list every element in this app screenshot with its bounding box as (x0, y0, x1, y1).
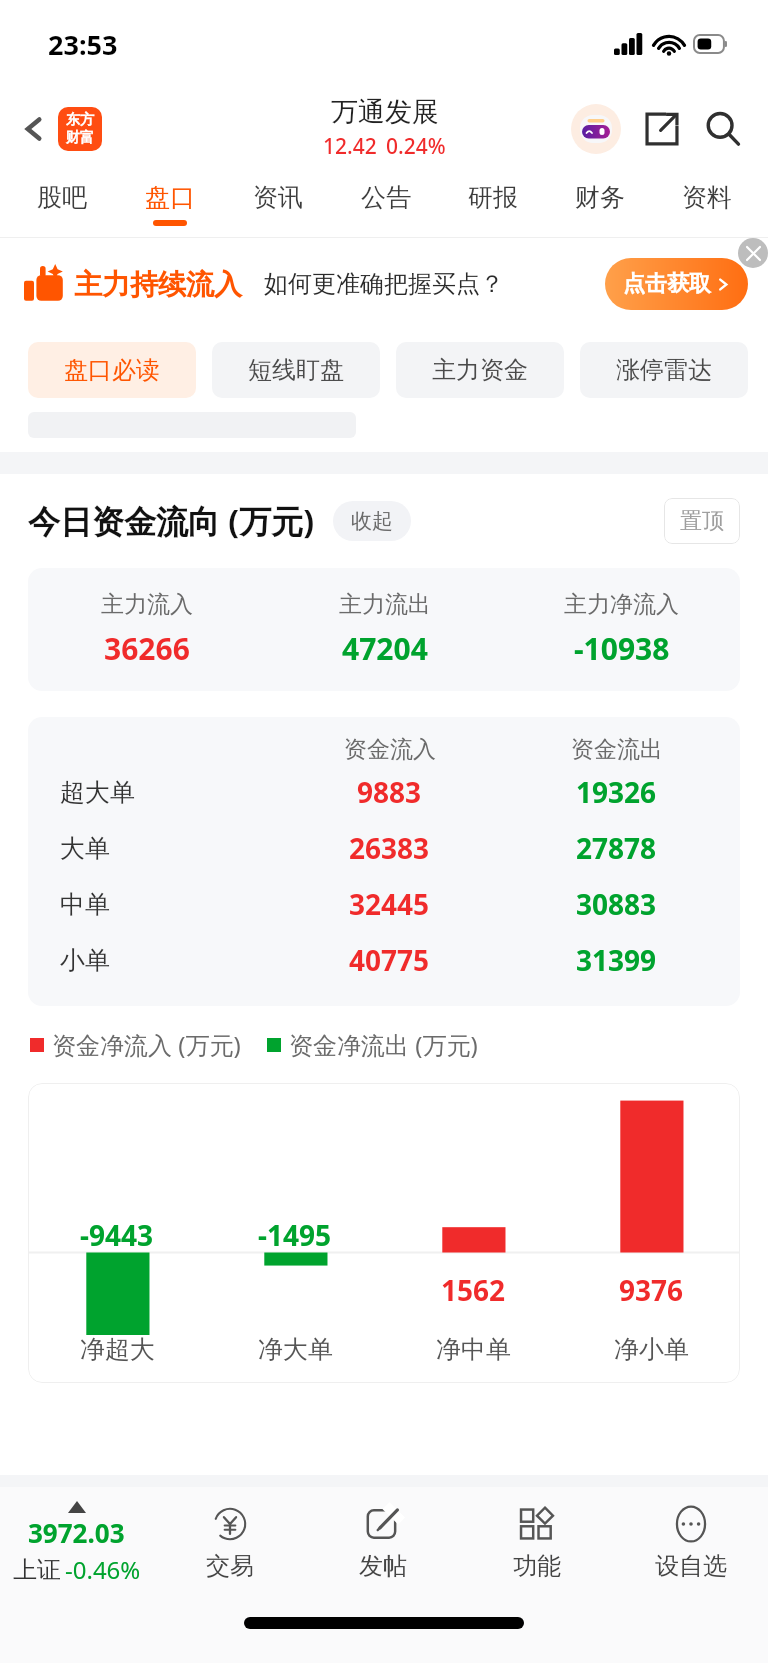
staticText: 9376 (619, 1271, 684, 1309)
staticText: 资金流入 (344, 735, 436, 764)
button[interactable]: Search (696, 102, 750, 156)
staticText: 公告 (361, 182, 411, 213)
staticText: 36266 (104, 628, 190, 669)
staticText: 收起 (351, 508, 393, 534)
staticText: 大单 (60, 833, 110, 864)
staticText: 23:53 (48, 26, 118, 63)
button[interactable]: 交易 (153, 1487, 306, 1599)
staticText: 设自选 (655, 1551, 727, 1581)
button[interactable]: 3972.03 (0, 1487, 153, 1599)
staticText: 12.42 (323, 132, 377, 161)
staticText: 26383 (349, 829, 430, 867)
button[interactable]: 置顶 (664, 498, 740, 544)
button[interactable]: AI assistant (568, 101, 624, 157)
button[interactable]: 资讯 (224, 170, 332, 237)
staticText: 小单 (60, 945, 110, 976)
button[interactable]: Close (738, 238, 768, 268)
staticText: 主力资金 (432, 355, 528, 385)
staticText: 40775 (349, 941, 430, 979)
staticText: 如何更准确把握买点？ (264, 269, 504, 299)
staticText: 财富 (66, 129, 94, 147)
button[interactable]: 主力资金 (396, 342, 564, 398)
staticText: 财务 (575, 182, 625, 213)
staticText: -9443 (80, 1216, 154, 1254)
button[interactable]: 设自选 (614, 1487, 768, 1599)
staticText: 主力持续流入 (74, 267, 242, 302)
button[interactable]: 股吧 (8, 170, 116, 237)
staticText: 资金净流出 (万元) (289, 1028, 478, 1061)
button[interactable]: 点击获取 (605, 258, 748, 310)
staticText: 中单 (60, 889, 110, 920)
staticText: -10938 (574, 628, 670, 669)
button[interactable]: 财务 (546, 170, 653, 237)
staticText: 盘口 (145, 182, 195, 213)
staticText: 资金流出 (571, 735, 663, 764)
staticText: 主力流入 (101, 590, 193, 619)
staticText: -0.46% (65, 1553, 141, 1586)
button[interactable]: 盘口必读 (28, 342, 196, 398)
staticText: 净小单 (614, 1334, 689, 1365)
button[interactable]: Back (10, 99, 114, 159)
staticText: 功能 (513, 1551, 561, 1581)
staticText: 净超大 (80, 1334, 155, 1365)
staticText: 47204 (342, 628, 428, 669)
staticText: 短线盯盘 (248, 355, 344, 385)
staticText: 主力流出 (339, 590, 431, 619)
button[interactable]: Share (636, 103, 688, 155)
staticText: 股吧 (37, 182, 87, 213)
staticText: 超大单 (60, 777, 135, 808)
button[interactable]: 发帖 (306, 1487, 460, 1599)
staticText: 盘口必读 (64, 355, 160, 385)
button[interactable]: 短线盯盘 (212, 342, 380, 398)
button[interactable]: 资料 (653, 170, 760, 237)
staticText: 涨停雷达 (616, 355, 712, 385)
staticText: 9883 (357, 773, 422, 811)
staticText: 30883 (576, 885, 657, 923)
staticText: 交易 (206, 1551, 254, 1581)
staticText: 点击获取 (623, 270, 711, 298)
staticText: 主力净流入 (564, 590, 679, 619)
button[interactable]: 功能 (460, 1487, 614, 1599)
staticText: 32445 (349, 885, 430, 923)
staticText: 1562 (441, 1271, 506, 1309)
staticText: 置顶 (680, 507, 724, 535)
staticText: 研报 (468, 182, 518, 213)
button[interactable]: 研报 (439, 170, 546, 237)
staticText: 0.24% (386, 132, 446, 161)
staticText: 3972.03 (28, 1515, 125, 1550)
staticText: 上证 (13, 1555, 61, 1585)
staticText: 万通发展 (331, 95, 439, 129)
staticText: 资讯 (253, 182, 303, 213)
staticText: 东方 (66, 111, 94, 129)
staticText: 资金净流入 (万元) (52, 1028, 241, 1061)
staticText: 19326 (576, 773, 657, 811)
staticText: -1495 (258, 1216, 332, 1254)
staticText: 27878 (576, 829, 657, 867)
staticText: 净中单 (436, 1334, 511, 1365)
staticText: 31399 (576, 941, 657, 979)
button[interactable]: 公告 (332, 170, 439, 237)
button[interactable]: 涨停雷达 (580, 342, 748, 398)
staticText: 净大单 (258, 1334, 333, 1365)
staticText: 资料 (682, 182, 732, 213)
button[interactable]: 盘口 (116, 170, 224, 237)
staticText: 发帖 (359, 1551, 407, 1581)
staticText: 今日资金流向 (万元) (28, 499, 315, 543)
button[interactable]: 收起 (333, 501, 411, 541)
